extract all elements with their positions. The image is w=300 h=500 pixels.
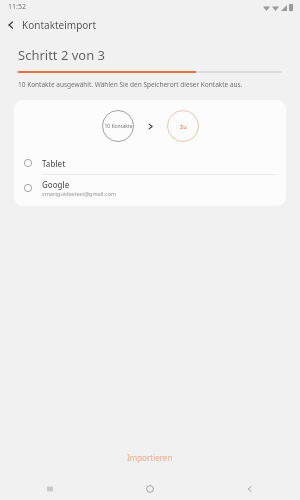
button[interactable]: Recents: [0, 478, 100, 500]
staticText: 10 Kontakte: [104, 123, 133, 130]
staticText: Google: [42, 179, 70, 190]
staticText: Schritt 2 von 3: [18, 46, 106, 64]
button[interactable]: Importieren: [0, 446, 300, 468]
staticText: 11:52: [8, 2, 26, 12]
staticText: Importieren: [127, 452, 173, 463]
button[interactable]: Tablet: [14, 152, 286, 174]
staticText: smartguidestest@gmail.com: [42, 190, 117, 197]
button[interactable]: Home: [100, 478, 200, 500]
staticText: 10 Kontakte ausgewählt. Wählen Sie den S…: [18, 80, 243, 89]
button[interactable]: Back: [200, 478, 300, 500]
staticText: Zu: [180, 123, 187, 130]
staticText: Kontakteimport: [22, 18, 97, 32]
button[interactable]: Google: [14, 175, 286, 201]
button[interactable]: Back: [0, 14, 22, 36]
staticText: Tablet: [42, 158, 66, 169]
